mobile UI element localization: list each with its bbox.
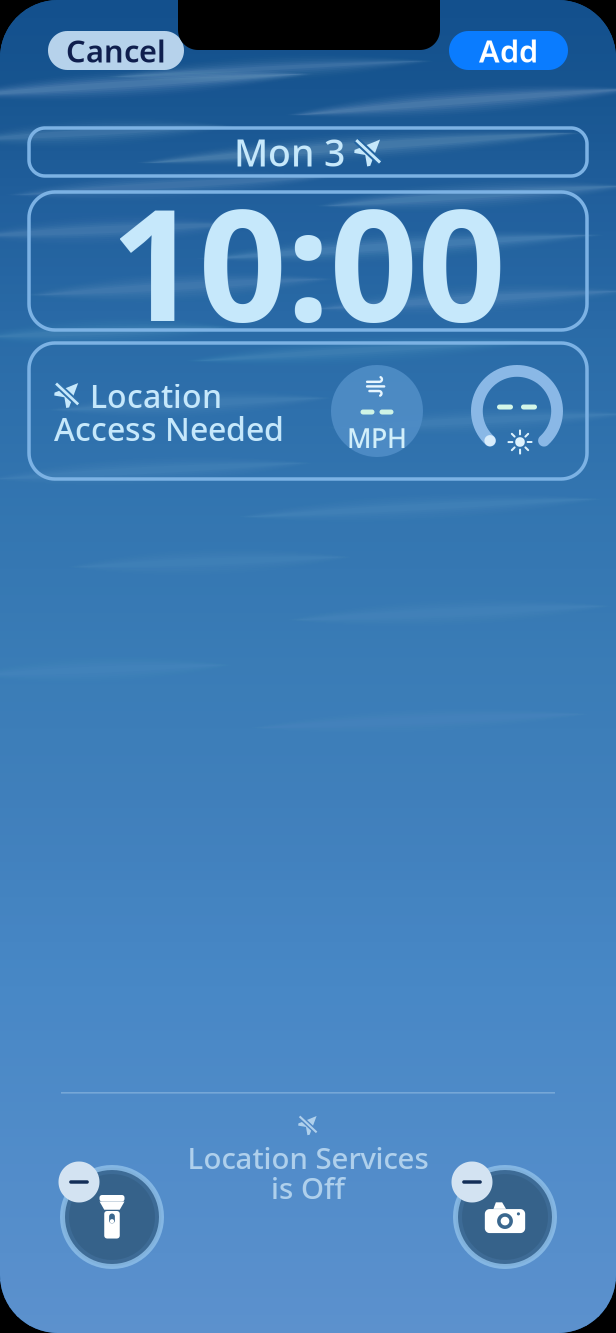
staticText: Mon 3 xyxy=(234,127,345,177)
staticText: Access Needed xyxy=(54,407,284,450)
staticText: is Off xyxy=(271,1168,345,1207)
button[interactable]: Cancel xyxy=(48,31,184,70)
staticText: Cancel xyxy=(66,30,166,71)
button[interactable]: 10:00 xyxy=(29,192,587,330)
button[interactable]: Flashlight xyxy=(54,1159,170,1275)
staticText: Add xyxy=(479,30,538,71)
staticText: Location xyxy=(90,374,222,417)
button[interactable]: Camera xyxy=(447,1159,563,1275)
staticText: 10:00 xyxy=(110,158,505,364)
staticText: Location Services xyxy=(187,1138,428,1177)
button[interactable]: Add xyxy=(449,31,568,70)
button[interactable]: Mon 3 xyxy=(29,128,587,176)
button[interactable]: Location xyxy=(29,343,587,479)
staticText: MPH xyxy=(347,420,407,456)
